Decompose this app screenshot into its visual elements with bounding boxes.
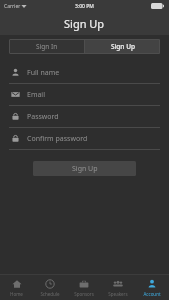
staticText: Sign Up <box>111 42 135 51</box>
button[interactable]: Sign In <box>9 39 84 54</box>
button[interactable]: Password <box>0 106 169 127</box>
button[interactable]: Sponsors <box>67 275 101 300</box>
button[interactable]: Sign Up <box>85 39 160 54</box>
staticText: Sign Up <box>72 164 98 174</box>
staticText: Carrier <box>4 3 21 10</box>
button[interactable]: Home <box>0 275 33 300</box>
staticText: 3:00 PM <box>75 3 94 10</box>
button[interactable]: Schedule <box>33 275 67 300</box>
staticText: Email <box>27 90 45 100</box>
staticText: Account <box>143 291 161 297</box>
button[interactable]: Speakers <box>101 275 135 300</box>
staticText: Home <box>10 291 23 297</box>
staticText: Sponsors <box>74 291 94 297</box>
button[interactable]: Account <box>135 275 169 300</box>
staticText: Full name <box>27 68 60 78</box>
staticText: Password <box>27 112 59 122</box>
button[interactable]: Full name <box>0 62 169 83</box>
button[interactable]: Email <box>0 84 169 105</box>
button[interactable]: Sign Up <box>33 161 136 176</box>
staticText: Confirm password <box>27 134 88 144</box>
staticText: Sign Up <box>64 16 105 31</box>
staticText: Speakers <box>108 291 128 297</box>
button[interactable]: Confirm password <box>0 128 169 149</box>
staticText: Sign In <box>36 42 58 51</box>
staticText: Schedule <box>40 291 60 297</box>
